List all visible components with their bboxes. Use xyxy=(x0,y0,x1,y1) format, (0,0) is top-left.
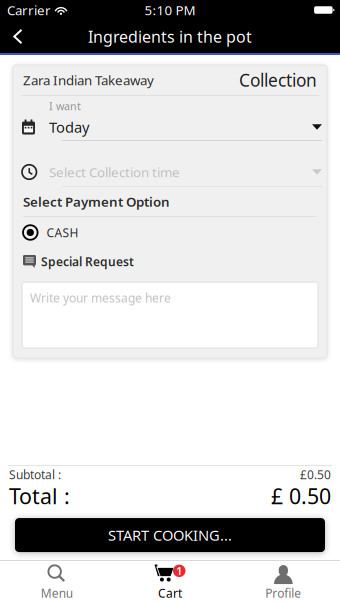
staticText: CASH xyxy=(47,224,79,240)
staticText: Select Collection time xyxy=(49,163,180,181)
button[interactable]: Profile xyxy=(227,561,340,604)
staticText: I want xyxy=(49,99,81,113)
staticText: Subtotal : xyxy=(9,467,61,482)
staticText: Cart xyxy=(158,585,182,601)
button[interactable]: CASH xyxy=(13,217,327,248)
staticText: Profile xyxy=(265,585,301,601)
button[interactable]: Back xyxy=(0,20,37,53)
staticText: Special Request xyxy=(41,253,134,269)
staticText: £ 0.50 xyxy=(271,482,331,510)
staticText: Write your message here xyxy=(30,290,171,306)
staticText: £0.50 xyxy=(300,467,331,482)
staticText: Zara Indian Takeaway xyxy=(23,71,154,89)
staticText: Today xyxy=(49,117,89,137)
staticText: Select Payment Option xyxy=(23,193,170,210)
button[interactable]: 1 xyxy=(113,561,227,604)
staticText: START COOKING... xyxy=(108,525,232,545)
staticText: 1 xyxy=(176,564,182,578)
button[interactable]: Menu xyxy=(0,561,113,604)
staticText: Carrier xyxy=(7,1,51,19)
staticText: Total : xyxy=(9,482,70,510)
button[interactable]: START COOKING... xyxy=(15,518,325,552)
staticText: Collection xyxy=(239,68,317,91)
staticText: Ingredients in the pot xyxy=(88,26,252,47)
staticText: Menu xyxy=(41,585,73,601)
staticText: 5:10 PM xyxy=(144,1,195,19)
